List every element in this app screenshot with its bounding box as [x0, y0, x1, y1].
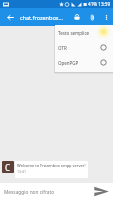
- button[interactable]: More options: [100, 8, 113, 26]
- staticText: 13:41: [17, 169, 26, 174]
- staticText: Welcome to Frozenbox xmpp server!: [17, 163, 86, 168]
- staticText: 41% 13:59: [88, 1, 111, 7]
- staticText: Testo semplice: [58, 30, 100, 36]
- button[interactable]: Attach file: [85, 8, 100, 26]
- staticText: OTR: [58, 45, 100, 51]
- button[interactable]: OTR: [55, 40, 113, 55]
- staticText: Messaggio non cifrato: [4, 189, 92, 196]
- button[interactable]: OpenPGP: [55, 55, 113, 70]
- staticText: chat.frozenbox...: [20, 14, 68, 21]
- button[interactable]: Testo semplice: [55, 25, 113, 40]
- button[interactable]: Encryption: [68, 8, 85, 26]
- staticText: C: [5, 162, 11, 173]
- button[interactable]: Send: [92, 183, 111, 200]
- staticText: OpenPGP: [58, 60, 100, 66]
- button[interactable]: Back: [0, 8, 20, 26]
